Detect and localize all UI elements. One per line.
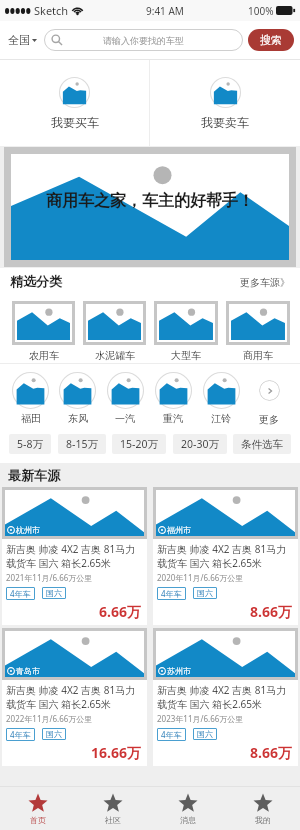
button[interactable]: 商用车之家，车主的好帮手！ xyxy=(11,154,289,260)
staticText: 4年车 xyxy=(161,729,182,740)
button[interactable]: 全国 xyxy=(6,29,39,51)
staticText: 16.66万 xyxy=(6,743,141,762)
staticText: 2020年11月/6.66万公里 xyxy=(157,572,244,583)
staticText: 国六 xyxy=(46,588,62,598)
button[interactable]: 5-8万 xyxy=(9,434,51,454)
staticText: 最新车源 xyxy=(8,467,60,483)
staticText: Sketch xyxy=(34,3,69,18)
button[interactable]: 8-15万 xyxy=(58,434,106,454)
staticText: 商用车 xyxy=(243,349,273,362)
button[interactable]: 15-20万 xyxy=(112,434,166,454)
staticText: 4年车 xyxy=(10,588,31,599)
staticText: 一汽 xyxy=(115,412,135,425)
staticText: 2021年11月/6.66万公里 xyxy=(6,572,93,583)
staticText: 青岛市 xyxy=(16,666,40,676)
staticText: 重汽 xyxy=(163,412,183,425)
staticText: 6.66万 xyxy=(6,602,141,621)
staticText: 8.66万 xyxy=(157,602,292,621)
button[interactable]: 请输入你要找的车型 xyxy=(44,29,243,51)
button[interactable]: 我要买车 xyxy=(0,60,149,146)
button[interactable]: 福田 xyxy=(7,364,54,425)
other: 更多品牌 xyxy=(259,380,280,401)
staticText: 请输入你要找的车型 xyxy=(103,35,184,46)
button[interactable]: 消息 xyxy=(150,787,225,830)
staticText: 杭州市 xyxy=(16,525,40,535)
button[interactable]: 首页 xyxy=(0,787,75,830)
staticText: 我要卖车 xyxy=(201,115,249,130)
staticText: 100% xyxy=(248,4,274,18)
staticText: 东风 xyxy=(68,412,88,425)
staticText: 9:41 AM xyxy=(146,4,184,18)
staticText: 2022年11月/6.66万公里 xyxy=(6,713,93,724)
button[interactable]: 我要卖车 xyxy=(150,60,300,146)
staticText: 5-8万 xyxy=(17,437,43,451)
button[interactable]: 青岛市 xyxy=(2,628,147,766)
button[interactable]: 更多车源》 xyxy=(240,276,290,289)
staticText: 福州市 xyxy=(167,525,191,535)
button[interactable]: 重汽 xyxy=(149,364,197,425)
button[interactable]: 江铃 xyxy=(197,364,245,425)
staticText: 全国 xyxy=(8,33,30,47)
staticText: 新吉奥 帅凌 4X2 吉奥 81马力载货车 国六 箱长2.65米 xyxy=(6,542,143,570)
staticText: 苏州市 xyxy=(167,666,191,676)
button[interactable]: 大型车 xyxy=(154,301,218,362)
button[interactable]: 我的 xyxy=(225,787,300,830)
button[interactable]: 条件选车 xyxy=(233,434,291,454)
staticText: 我要买车 xyxy=(51,115,99,130)
staticText: 国六 xyxy=(197,588,213,598)
staticText: 新吉奥 帅凌 4X2 吉奥 81马力载货车 国六 箱长2.65米 xyxy=(6,683,143,711)
staticText: 社区 xyxy=(105,815,121,825)
staticText: 国六 xyxy=(197,729,213,739)
staticText: 15-20万 xyxy=(120,437,158,451)
staticText: 国六 xyxy=(46,729,62,739)
button[interactable]: 杭州市 xyxy=(2,487,147,625)
staticText: 我的 xyxy=(255,815,271,825)
button[interactable]: 更多品牌 xyxy=(245,364,293,426)
button[interactable]: 一汽 xyxy=(101,364,149,425)
button[interactable]: 农用车 xyxy=(12,301,75,362)
staticText: 4年车 xyxy=(10,729,31,740)
staticText: 8-15万 xyxy=(66,437,98,451)
staticText: 8.66万 xyxy=(157,743,292,762)
staticText: 搜索 xyxy=(260,33,282,47)
button[interactable]: 福州市 xyxy=(153,487,298,625)
button[interactable]: 商用车 xyxy=(226,301,290,362)
staticText: 精选分类 xyxy=(10,273,62,289)
staticText: 新吉奥 帅凌 4X2 吉奥 81马力载货车 国六 箱长2.65米 xyxy=(157,683,294,711)
button[interactable]: 社区 xyxy=(75,787,150,830)
button[interactable]: 20-30万 xyxy=(173,434,227,454)
staticText: 消息 xyxy=(180,815,196,825)
staticText: 条件选车 xyxy=(241,438,283,451)
staticText: 新吉奥 帅凌 4X2 吉奥 81马力载货车 国六 箱长2.65米 xyxy=(157,542,294,570)
staticText: 福田 xyxy=(21,412,41,425)
staticText: 农用车 xyxy=(29,349,59,362)
button[interactable]: 搜索 xyxy=(248,29,294,51)
staticText: 水泥罐车 xyxy=(95,349,135,362)
button[interactable]: 水泥罐车 xyxy=(83,301,146,362)
button[interactable]: 东风 xyxy=(54,364,101,425)
staticText: 大型车 xyxy=(171,349,201,362)
staticText: 4年车 xyxy=(161,588,182,599)
staticText: 20-30万 xyxy=(181,437,219,451)
staticText: 2023年11月/6.66万公里 xyxy=(157,713,244,724)
button[interactable]: 苏州市 xyxy=(153,628,298,766)
staticText: 商用车之家，车主的好帮手！ xyxy=(46,191,254,211)
staticText: 首页 xyxy=(30,815,46,825)
staticText: 更多 xyxy=(259,413,279,426)
staticText: 江铃 xyxy=(211,412,231,425)
